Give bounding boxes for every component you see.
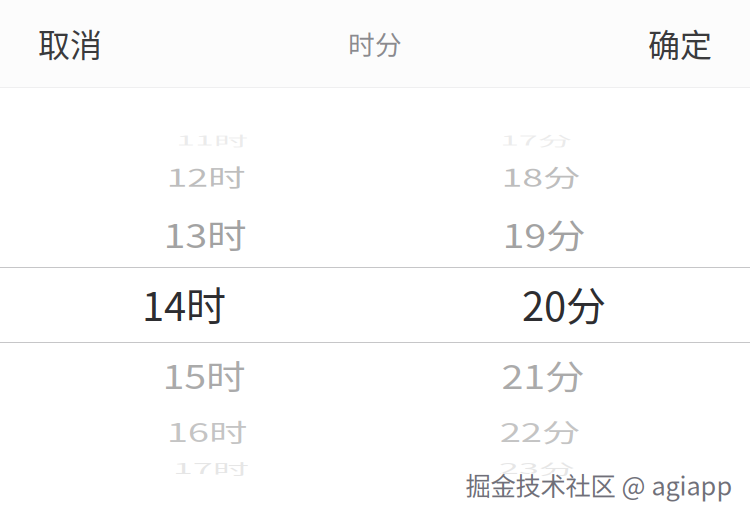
staticText: 13时	[163, 204, 247, 262]
button[interactable]: 确定	[622, 1, 750, 87]
staticText: 11时	[170, 111, 254, 169]
staticText: 16时	[165, 402, 249, 460]
staticText: 掘金技术社区 @ agiapp	[465, 466, 732, 503]
staticText: 12时	[164, 147, 248, 205]
button[interactable]: 取消	[0, 1, 128, 87]
staticText: 掘金技术社区 @ agiapp	[464, 465, 731, 501]
staticText: 23分	[495, 439, 579, 497]
staticText: 17分	[494, 111, 578, 169]
staticText: 取消	[38, 20, 102, 66]
staticText: 18分	[499, 147, 583, 205]
staticText: 17时	[169, 439, 253, 497]
staticText: 21分	[501, 345, 585, 403]
staticText: 22分	[498, 402, 582, 460]
staticText: 19分	[502, 204, 586, 262]
staticText: 14时	[142, 274, 226, 332]
staticText: 20分	[522, 274, 606, 332]
staticText: 时分	[348, 24, 402, 62]
staticText: 15时	[162, 345, 246, 403]
staticText: 确定	[648, 20, 712, 66]
